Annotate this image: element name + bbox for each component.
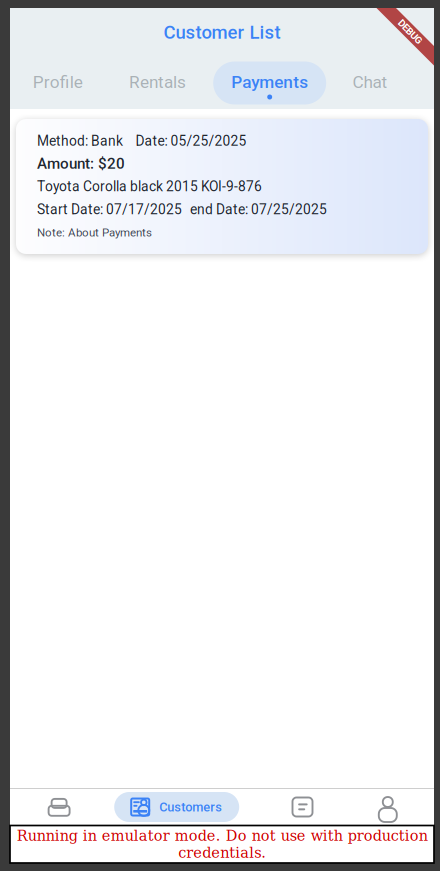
- button[interactable]: Payments: [213, 57, 326, 109]
- staticText: Chat: [352, 72, 387, 92]
- staticText: Toyota Corolla black 2015 KOI-9-876: [37, 178, 262, 195]
- button[interactable]: Customers: [114, 792, 239, 822]
- staticText: Date: 05/25/2025: [135, 133, 246, 149]
- button[interactable]: Chat: [325, 57, 415, 109]
- staticText: DEBUG: [395, 26, 425, 38]
- staticText: Note: About Payments: [37, 226, 152, 239]
- staticText: Rentals: [129, 72, 186, 92]
- staticText: end Date: 07/25/2025: [190, 201, 327, 218]
- staticText: Customers: [159, 799, 222, 814]
- staticText: Start Date: 07/17/2025: [37, 201, 182, 218]
- staticText: Method: Bank: [37, 133, 123, 149]
- button[interactable]: Profile: [13, 57, 103, 109]
- button[interactable]: Rentals: [23, 788, 95, 825]
- staticText: Amount: $20: [37, 155, 125, 172]
- staticText: Payments: [231, 72, 308, 92]
- staticText: Customer List: [163, 22, 280, 43]
- staticText: Running in emulator mode. Do not use wit…: [16, 827, 427, 861]
- staticText: Profile: [33, 72, 83, 92]
- button[interactable]: Notes: [266, 788, 338, 825]
- button[interactable]: Rentals: [112, 57, 202, 109]
- button[interactable]: Profile: [352, 788, 424, 825]
